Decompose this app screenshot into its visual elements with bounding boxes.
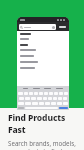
button[interactable] — [33, 88, 40, 89]
button[interactable] — [31, 97, 36, 100]
button[interactable] — [57, 102, 62, 105]
staticText: Search brands, models, or products to fi… — [8, 139, 78, 150]
button[interactable] — [23, 88, 28, 89]
button[interactable] — [29, 92, 33, 95]
button[interactable]: Search — [59, 107, 68, 109]
button[interactable] — [25, 97, 30, 100]
button[interactable] — [17, 65, 69, 71]
button[interactable] — [44, 92, 48, 95]
button[interactable] — [53, 97, 57, 100]
button[interactable] — [34, 92, 38, 95]
button[interactable] — [45, 102, 50, 105]
staticText: Find Products Fast — [8, 112, 78, 136]
button[interactable] — [48, 97, 52, 100]
button[interactable] — [49, 92, 53, 95]
button[interactable] — [17, 47, 69, 53]
button[interactable] — [17, 53, 69, 59]
button[interactable] — [51, 102, 56, 105]
button[interactable] — [64, 92, 68, 95]
button[interactable] — [19, 97, 24, 100]
button[interactable] — [63, 97, 67, 100]
button[interactable] — [39, 102, 44, 105]
button[interactable] — [32, 102, 38, 105]
button[interactable] — [18, 102, 24, 105]
button[interactable]: Cancel — [58, 26, 67, 28]
button[interactable] — [54, 92, 58, 95]
button[interactable]: Clear search — [19, 24, 56, 30]
button[interactable] — [58, 97, 62, 100]
button[interactable] — [56, 88, 63, 89]
button[interactable] — [37, 97, 42, 100]
button[interactable] — [18, 92, 23, 95]
button[interactable] — [17, 36, 69, 42]
button[interactable] — [63, 102, 68, 105]
button[interactable] — [43, 97, 47, 100]
button[interactable] — [25, 102, 31, 105]
button[interactable] — [39, 92, 43, 95]
button[interactable] — [17, 59, 69, 65]
button[interactable] — [24, 92, 28, 95]
button[interactable] — [59, 92, 63, 95]
other: Clear search — [52, 26, 55, 29]
button[interactable] — [44, 88, 51, 89]
